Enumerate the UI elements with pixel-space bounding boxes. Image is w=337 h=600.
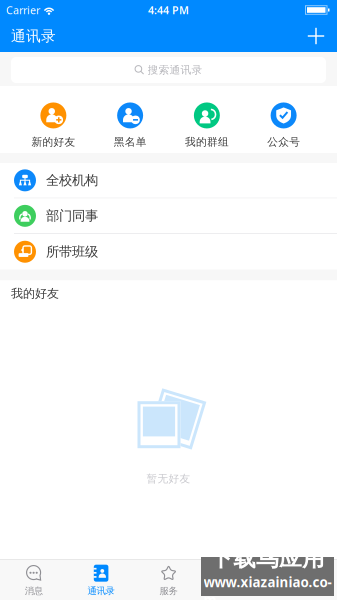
- button[interactable]: 发现: [202, 559, 270, 600]
- staticText: 服务: [159, 585, 177, 597]
- staticText: 发现: [227, 585, 245, 597]
- staticText: 通讯录: [88, 585, 115, 597]
- staticText: 新的好友: [31, 135, 75, 148]
- button[interactable]: 添加联系人: [300, 20, 332, 52]
- button[interactable]: 服务: [135, 559, 202, 600]
- button[interactable]: 新的好友: [15, 102, 92, 148]
- staticText: 全校机构: [46, 172, 98, 189]
- button[interactable]: 我的: [270, 559, 337, 600]
- staticText: 我的: [294, 585, 312, 597]
- staticText: 我的好友: [11, 286, 59, 301]
- button[interactable]: 我的群组: [168, 102, 245, 148]
- staticText: 公众号: [267, 135, 300, 148]
- staticText: 暂无好友: [146, 472, 190, 485]
- staticText: 4:44 PM: [148, 3, 189, 17]
- staticText: 部门同事: [46, 208, 98, 224]
- staticText: 所带班级: [46, 244, 98, 260]
- button[interactable]: 公众号: [245, 102, 322, 148]
- staticText: Carrier: [6, 3, 40, 17]
- staticText: 搜索通讯录: [147, 63, 202, 76]
- staticText: 通讯录: [11, 27, 56, 45]
- staticText: www.xiazainiao.com: [203, 573, 331, 600]
- button[interactable]: 部门同事: [0, 198, 337, 234]
- staticText: 下载鸟应用: [210, 544, 325, 572]
- button[interactable]: 全校机构: [0, 163, 337, 198]
- button[interactable]: 消息: [0, 559, 67, 600]
- staticText: 消息: [25, 585, 43, 597]
- button[interactable]: 黑名单: [92, 102, 169, 148]
- staticText: 黑名单: [114, 135, 147, 148]
- staticText: 我的群组: [185, 135, 229, 148]
- button[interactable]: 通讯录: [67, 559, 135, 600]
- button[interactable]: 搜索通讯录: [11, 57, 326, 83]
- button[interactable]: 所带班级: [0, 234, 337, 269]
